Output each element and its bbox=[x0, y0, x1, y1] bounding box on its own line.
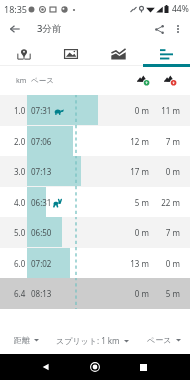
staticText: 07:06 bbox=[31, 136, 52, 147]
button[interactable]: Photos bbox=[47, 42, 94, 66]
button[interactable]: 3.0 bbox=[0, 156, 190, 187]
button[interactable]: 距離 bbox=[14, 335, 39, 345]
staticText: 4.0 bbox=[14, 197, 26, 208]
staticText: 5 m bbox=[119, 197, 149, 208]
staticText: 3.0 bbox=[14, 166, 26, 177]
staticText: 22 m bbox=[150, 197, 180, 208]
button[interactable]: Back bbox=[5, 19, 25, 39]
button[interactable]: Splits bbox=[142, 42, 190, 66]
button[interactable]: Graphs bbox=[94, 42, 142, 66]
staticText: 7 m bbox=[150, 136, 180, 147]
button[interactable]: Share bbox=[149, 19, 169, 39]
button[interactable]: Home bbox=[86, 358, 104, 376]
staticText: 11 m bbox=[150, 105, 180, 116]
button[interactable]: ペース bbox=[147, 335, 181, 345]
staticText: 0 m bbox=[119, 227, 149, 238]
staticText: スプリット: 1 km bbox=[56, 335, 120, 346]
staticText: 0 m bbox=[150, 166, 180, 177]
staticText: 07:02 bbox=[31, 258, 52, 269]
button[interactable]: 1.0 bbox=[0, 95, 190, 126]
staticText: ペース bbox=[31, 76, 54, 85]
staticText: km bbox=[16, 76, 27, 86]
staticText: 13 m bbox=[119, 258, 149, 269]
button[interactable]: スプリット: 1 km bbox=[56, 335, 129, 346]
staticText: 6.0 bbox=[14, 258, 26, 269]
button[interactable]: 6.4 bbox=[0, 278, 190, 309]
staticText: ペース bbox=[147, 335, 172, 345]
staticText: 06:50 bbox=[31, 227, 52, 238]
button[interactable]: Map bbox=[0, 42, 47, 66]
button[interactable]: 4.0 bbox=[0, 187, 190, 218]
staticText: 18:35 bbox=[4, 3, 28, 15]
staticText: 距離 bbox=[14, 335, 30, 345]
button[interactable]: 6.0 bbox=[0, 248, 190, 279]
button[interactable]: More options bbox=[168, 19, 188, 39]
staticText: 5 m bbox=[150, 288, 180, 299]
staticText: 1.0 bbox=[14, 105, 26, 116]
staticText: 17 m bbox=[119, 166, 149, 177]
staticText: 5.0 bbox=[14, 227, 26, 238]
staticText: 06:31 bbox=[31, 197, 52, 208]
staticText: 44% bbox=[172, 3, 189, 15]
staticText: 2.0 bbox=[14, 136, 26, 147]
staticText: 0 m bbox=[150, 258, 180, 269]
button[interactable]: Recent apps bbox=[134, 358, 152, 376]
button[interactable]: 5.0 bbox=[0, 217, 190, 248]
staticText: 3分前 bbox=[37, 22, 62, 35]
button[interactable]: 2.0 bbox=[0, 126, 190, 157]
staticText: 6.4 bbox=[14, 288, 26, 299]
button[interactable]: Back bbox=[36, 358, 54, 376]
staticText: 12 m bbox=[119, 136, 149, 147]
staticText: 07:31 bbox=[31, 105, 52, 116]
staticText: 0 m bbox=[119, 288, 149, 299]
staticText: 08:13 bbox=[31, 288, 52, 299]
staticText: 07:13 bbox=[31, 166, 52, 177]
staticText: 0 m bbox=[119, 105, 149, 116]
staticText: 7 m bbox=[150, 227, 180, 238]
